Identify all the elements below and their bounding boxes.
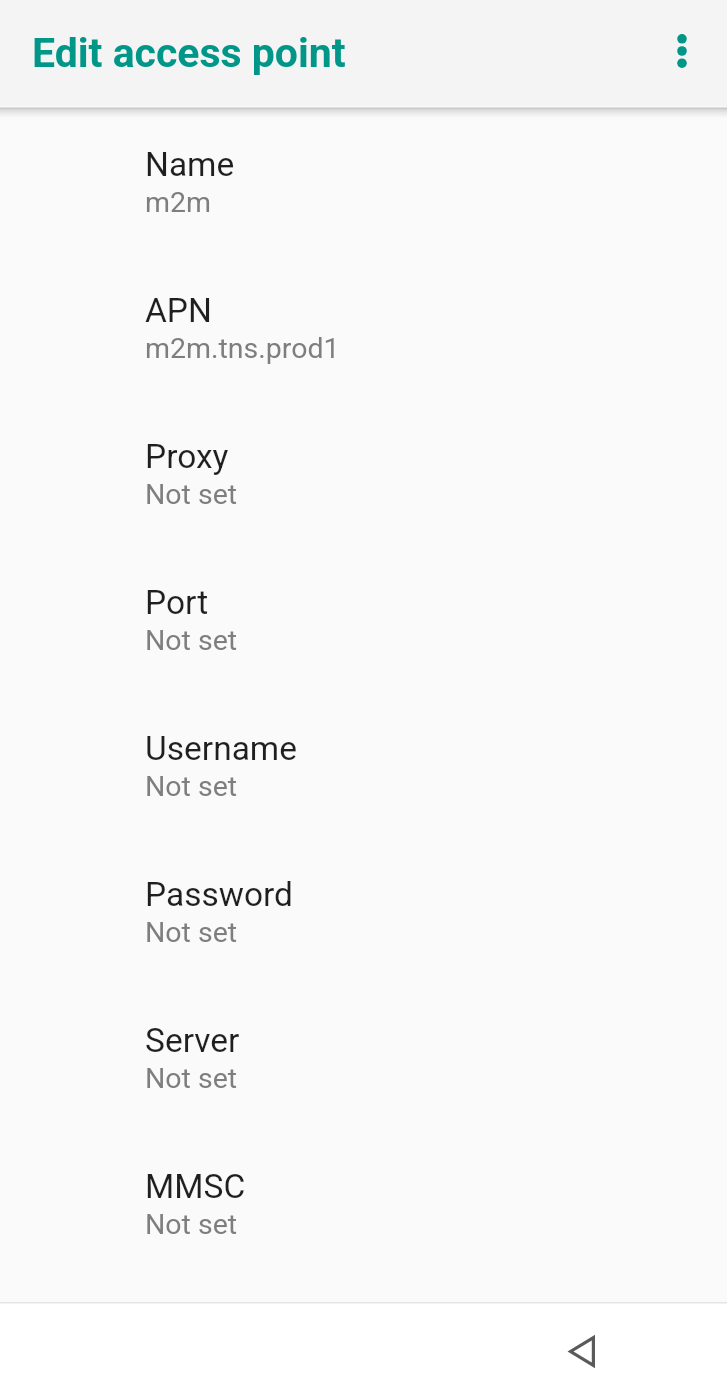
staticText: Not set [145, 1208, 238, 1241]
button[interactable]: Port [0, 583, 727, 729]
staticText: MMSC [145, 1167, 246, 1206]
staticText: Proxy [145, 437, 229, 476]
staticText: Not set [145, 770, 238, 803]
staticText: m2m [145, 186, 212, 219]
staticText: Not set [145, 1062, 238, 1095]
button[interactable]: MMSC [0, 1167, 727, 1302]
button[interactable]: More options [646, 15, 718, 87]
button[interactable]: APN [0, 291, 727, 437]
staticText: APN [145, 291, 212, 330]
staticText: Name [145, 145, 235, 184]
staticText: Not set [145, 624, 238, 657]
button[interactable]: Back [537, 1306, 627, 1396]
staticText: Server [145, 1021, 240, 1060]
staticText: Password [145, 875, 293, 914]
staticText: Not set [145, 478, 238, 511]
staticText: m2m.tns.prod1 [145, 332, 340, 365]
button[interactable]: Name [0, 145, 727, 291]
button[interactable]: Proxy [0, 437, 727, 583]
staticText: Port [145, 583, 209, 622]
staticText: Not set [145, 916, 238, 949]
staticText: Edit access point [32, 29, 346, 77]
button[interactable]: Server [0, 1021, 727, 1167]
button[interactable]: Username [0, 729, 727, 875]
staticText: Username [145, 729, 297, 768]
button[interactable]: Password [0, 875, 727, 1021]
